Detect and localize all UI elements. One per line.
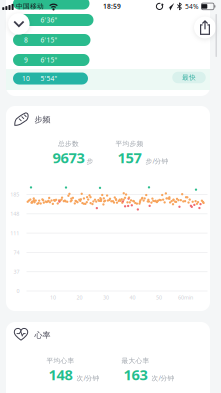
staticText: 步频 [34,115,50,124]
staticText: 60min [178,294,193,301]
staticText: 7 [24,16,28,24]
staticText: 30 [103,294,109,301]
staticText: 9673 [52,148,84,167]
staticText: 中国移动 [16,2,44,10]
staticText: 次/分钟 [76,373,99,382]
staticText: 40 [129,294,135,301]
staticText: 50 [156,294,162,301]
staticText: 6'36" [40,16,57,24]
staticText: 157 [117,148,141,167]
staticText: 185 [10,191,19,198]
staticText: 54% [185,2,199,11]
staticText: 163 [123,365,147,384]
staticText: 心率 [34,330,50,340]
staticText: 18:59 [103,2,121,11]
staticText: 步 [86,157,93,165]
staticText: 步/分钟 [145,156,168,165]
staticText: 74 [13,249,19,256]
button[interactable]: Collapse splits [8,13,30,35]
staticText: 6'15" [40,36,57,44]
staticText: 0 [16,287,19,295]
staticText: 148 [48,365,72,384]
staticText: 最快 [182,73,196,82]
staticText: 平均心率 [46,357,74,365]
staticText: 111 [10,230,19,237]
staticText: 37 [13,268,19,275]
staticText: 148 [10,210,19,217]
staticText: 平均步频 [115,140,143,148]
staticText: 总步数 [58,140,79,148]
staticText: 5'54" [40,74,57,83]
staticText: 次/分钟 [151,373,174,382]
staticText: 10 [22,74,30,83]
staticText: 6'15" [40,56,57,64]
staticText: 8 [24,36,28,44]
button[interactable]: Share [194,16,216,38]
staticText: 10 [50,294,56,301]
staticText: 最大心率 [121,357,149,365]
staticText: 20 [76,294,82,301]
staticText: 9 [24,56,28,64]
